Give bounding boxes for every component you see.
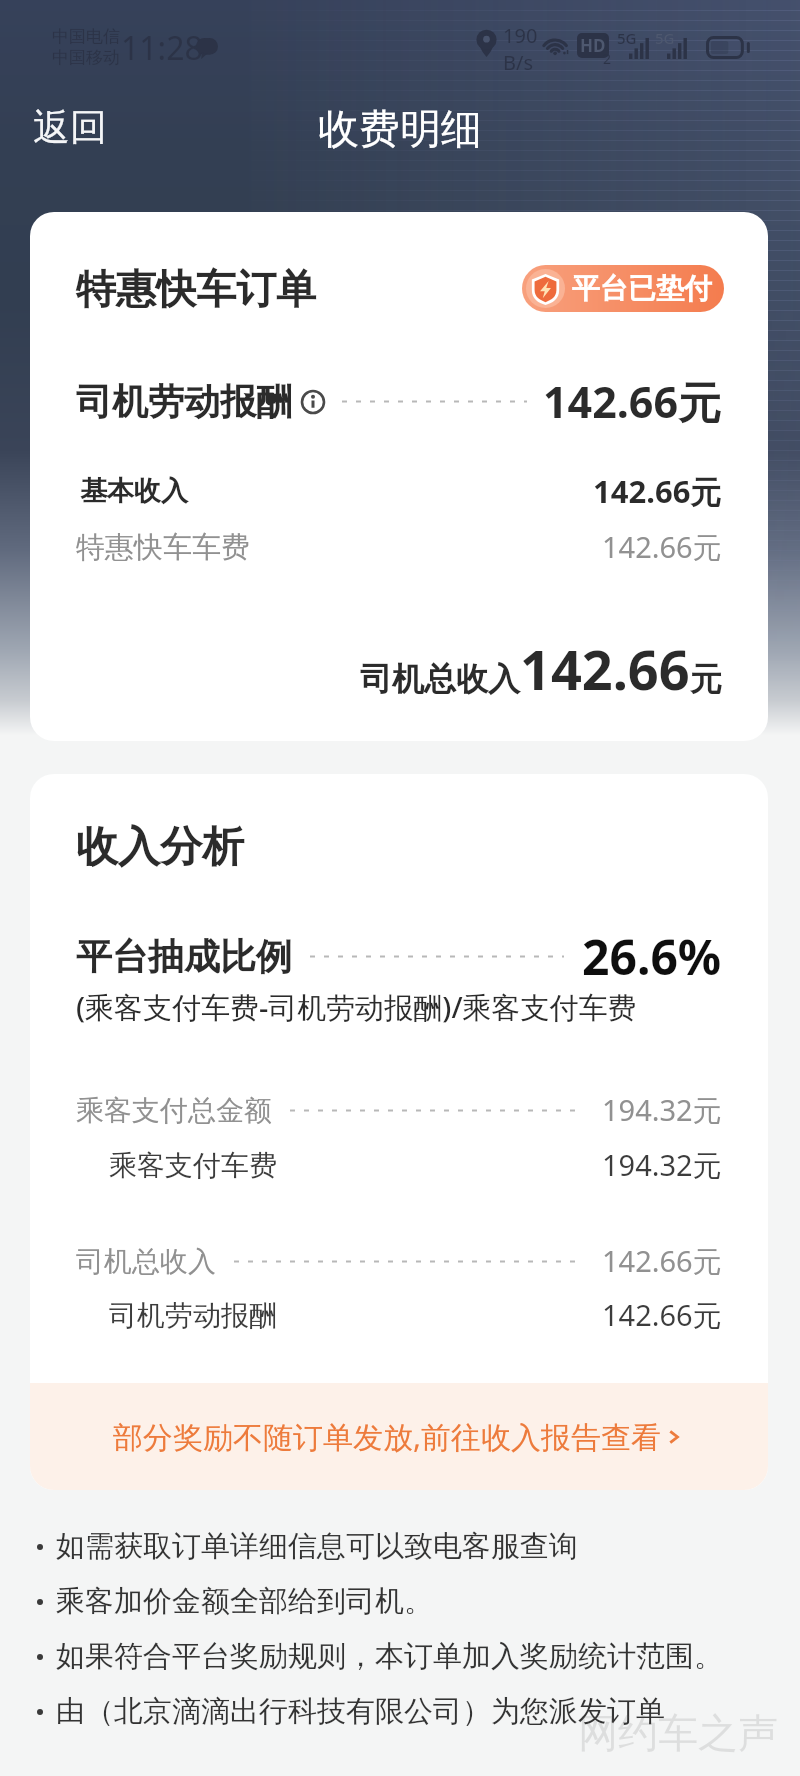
staticText: 142.66 bbox=[520, 632, 690, 706]
button[interactable]: 返回 bbox=[23, 96, 117, 159]
other: 说明 bbox=[300, 389, 326, 415]
staticText: 190 bbox=[503, 22, 538, 49]
staticText: 平台已垫付 bbox=[572, 271, 712, 306]
staticText: 网约车之声 bbox=[578, 1708, 778, 1758]
staticText: 由（北京滴滴出行科技有限公司）为您派发订单 bbox=[56, 1693, 665, 1730]
staticText: 如需获取订单详细信息可以致电客服查询 bbox=[56, 1528, 578, 1565]
staticText: 司机总收入 bbox=[76, 1244, 216, 1279]
staticText: 司机总收入 bbox=[360, 659, 520, 699]
staticText: 142.66元 bbox=[593, 470, 722, 512]
staticText: 乘客支付总金额 bbox=[76, 1093, 272, 1128]
staticText: 1 bbox=[603, 30, 612, 49]
staticText: 乘客支付车费 bbox=[109, 1148, 277, 1183]
staticText: 142.66元 bbox=[602, 527, 722, 567]
staticText: 中国移动 bbox=[52, 47, 120, 68]
staticText: 中国电信 bbox=[52, 26, 120, 47]
staticText: 142.66元 bbox=[602, 1241, 722, 1281]
staticText: 5G bbox=[655, 28, 675, 48]
staticText: 元 bbox=[690, 659, 722, 699]
staticText: B/s bbox=[503, 49, 534, 76]
staticText: (乘客支付车费-司机劳动报酬)/乘客支付车费 bbox=[76, 987, 637, 1027]
staticText: 如果符合平台奖励规则，本订单加入奖励统计范围。 bbox=[56, 1638, 723, 1675]
staticText: 11:28 bbox=[121, 26, 203, 70]
staticText: HD bbox=[580, 34, 606, 57]
staticText: 部分奖励不随订单发放,前往收入报告查看 bbox=[113, 1416, 662, 1457]
staticText: 5G bbox=[617, 28, 637, 48]
staticText: 收入分析 bbox=[76, 821, 244, 874]
staticText: 2 bbox=[603, 49, 612, 68]
staticText: 特惠快车订单 bbox=[76, 264, 316, 314]
staticText: 基本收入 bbox=[80, 474, 188, 508]
staticText: 司机劳动报酬 bbox=[109, 1298, 277, 1333]
staticText: 返回 bbox=[33, 104, 107, 151]
staticText: 194.32元 bbox=[602, 1090, 722, 1130]
staticText: 26.6% bbox=[582, 924, 722, 989]
staticText: 收费明细 bbox=[318, 104, 482, 156]
staticText: 142.66元 bbox=[543, 372, 722, 431]
staticText: 142.66元 bbox=[602, 1295, 722, 1335]
staticText: 司机劳动报酬 bbox=[76, 379, 292, 424]
staticText: 平台抽成比例 bbox=[76, 934, 292, 979]
button[interactable]: 平台已垫付 bbox=[522, 265, 724, 312]
button[interactable]: 部分奖励不随订单发放,前往收入报告查看 bbox=[30, 1383, 768, 1490]
staticText: 194.32元 bbox=[602, 1145, 722, 1185]
staticText: 乘客加价金额全部给到司机。 bbox=[56, 1583, 433, 1620]
staticText: 特惠快车车费 bbox=[76, 529, 250, 566]
